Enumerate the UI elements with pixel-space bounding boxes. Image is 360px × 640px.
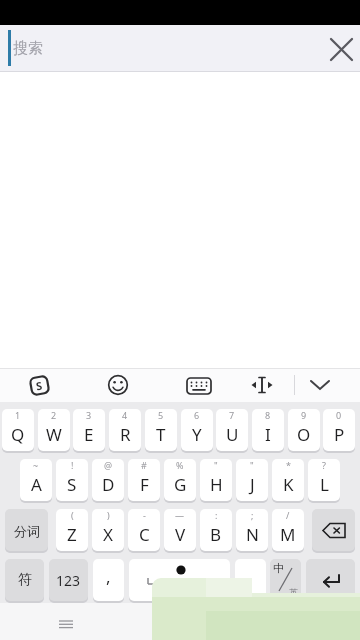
staticText: A xyxy=(31,473,42,496)
staticText: ! xyxy=(71,459,74,471)
button[interactable]: 1 xyxy=(2,409,34,451)
staticText: H xyxy=(210,473,223,496)
button[interactable]: 123 xyxy=(49,559,88,601)
staticText: U xyxy=(226,423,239,446)
button[interactable] xyxy=(104,371,132,399)
staticText: O xyxy=(297,423,311,446)
staticText: 7 xyxy=(229,409,235,421)
button[interactable]: " xyxy=(200,459,232,501)
staticText: " xyxy=(214,459,218,471)
staticText: E xyxy=(84,423,94,446)
staticText: " xyxy=(250,459,254,471)
staticText: D xyxy=(102,473,115,496)
button[interactable]: 2 xyxy=(38,409,70,451)
staticText: 4 xyxy=(122,409,128,421)
staticText: P xyxy=(334,423,345,446)
staticText: 3 xyxy=(86,409,92,421)
button[interactable]: 。 xyxy=(235,559,266,601)
staticText: 2 xyxy=(51,409,57,421)
button[interactable]: @ xyxy=(92,459,124,501)
staticText: 英 xyxy=(289,587,298,598)
staticText: 分词 xyxy=(14,523,40,539)
button[interactable]: S xyxy=(27,373,51,397)
staticText: 123 xyxy=(56,571,81,590)
staticText: 搜索 xyxy=(13,39,43,58)
staticText: 9 xyxy=(301,409,307,421)
button[interactable]: ) xyxy=(92,509,124,551)
staticText: — xyxy=(175,509,185,521)
button[interactable]: 6 xyxy=(181,409,213,451)
button[interactable]: # xyxy=(128,459,160,501)
button[interactable]: ; xyxy=(236,509,268,551)
staticText: 符 xyxy=(18,571,32,589)
button[interactable]: 3 xyxy=(73,409,105,451)
staticText: ( xyxy=(71,509,74,521)
button[interactable] xyxy=(184,371,214,401)
staticText: Z xyxy=(67,523,77,546)
button[interactable]: , xyxy=(93,559,124,601)
staticText: Q xyxy=(11,423,25,446)
button[interactable]: 5 xyxy=(145,409,177,451)
button[interactable] xyxy=(306,371,334,399)
staticText: 1 xyxy=(15,409,21,421)
button[interactable]: % xyxy=(164,459,196,501)
button[interactable]: : xyxy=(200,509,232,551)
button[interactable]: 0 xyxy=(323,409,355,451)
staticText: L xyxy=(320,473,329,496)
button[interactable]: 9 xyxy=(288,409,320,451)
staticText: ~ xyxy=(33,459,39,471)
staticText: 0 xyxy=(336,409,342,421)
staticText: M xyxy=(280,523,296,546)
button[interactable]: / xyxy=(272,509,304,551)
staticText: I xyxy=(265,423,271,446)
staticText: T xyxy=(156,423,166,446)
staticText: ) xyxy=(107,509,110,521)
staticText: B xyxy=(210,523,222,546)
button[interactable]: * xyxy=(272,459,304,501)
button[interactable] xyxy=(248,371,276,399)
button[interactable] xyxy=(312,509,355,551)
staticText: J xyxy=(250,473,255,496)
staticText: Y xyxy=(192,423,202,446)
button[interactable]: 4 xyxy=(109,409,141,451)
staticText: S xyxy=(35,377,44,393)
button[interactable] xyxy=(323,31,359,67)
staticText: - xyxy=(143,509,146,521)
button[interactable] xyxy=(129,559,230,601)
staticText: ? xyxy=(322,459,326,471)
staticText: ; xyxy=(251,509,254,521)
button[interactable] xyxy=(306,559,355,601)
staticText: @ xyxy=(104,459,113,471)
button[interactable]: 搜索 xyxy=(0,25,360,72)
staticText: W xyxy=(46,423,62,446)
button[interactable]: ~ xyxy=(20,459,52,501)
staticText: V xyxy=(175,523,186,546)
staticText: K xyxy=(283,473,294,496)
staticText: / xyxy=(286,509,290,521)
staticText: S xyxy=(67,473,77,496)
button[interactable]: 分词 xyxy=(5,509,48,551)
staticText: N xyxy=(246,523,259,546)
staticText: 8 xyxy=(265,409,271,421)
staticText: # xyxy=(141,459,147,471)
staticText: X xyxy=(103,523,113,546)
button[interactable]: ! xyxy=(56,459,88,501)
button[interactable]: ? xyxy=(308,459,340,501)
button[interactable]: 8 xyxy=(252,409,284,451)
button[interactable]: 中 xyxy=(270,559,301,601)
staticText: * xyxy=(286,459,291,471)
staticText: 中 xyxy=(273,561,284,575)
staticText: , xyxy=(106,565,111,588)
staticText: G xyxy=(174,473,187,496)
staticText: 5 xyxy=(158,409,164,421)
button[interactable]: " xyxy=(236,459,268,501)
staticText: C xyxy=(139,523,150,546)
button[interactable]: 7 xyxy=(216,409,248,451)
button[interactable]: — xyxy=(164,509,196,551)
staticText: : xyxy=(215,509,218,521)
staticText: F xyxy=(140,473,149,496)
staticText: 6 xyxy=(194,409,200,421)
button[interactable]: ( xyxy=(56,509,88,551)
button[interactable]: 符 xyxy=(5,559,44,601)
button[interactable]: - xyxy=(128,509,160,551)
